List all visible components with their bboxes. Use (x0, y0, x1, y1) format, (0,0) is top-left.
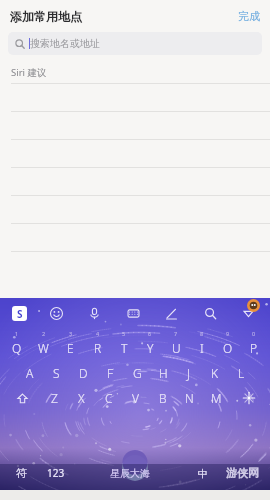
staticText: L (238, 365, 245, 381)
staticText: 3 (69, 330, 73, 337)
staticText: 2 (42, 330, 46, 337)
button[interactable] (0, 167, 270, 195)
staticText: 符 (16, 466, 27, 480)
button[interactable]: G (124, 362, 150, 384)
staticText: Siri 建议 (11, 66, 47, 79)
staticText: Q (12, 340, 22, 356)
button[interactable]: W (30, 337, 57, 359)
staticText: 添加常用地点 (10, 9, 82, 24)
button[interactable]: 符 (4, 461, 38, 485)
button[interactable]: U (163, 337, 189, 359)
staticText: K (211, 365, 219, 381)
button[interactable]: I (189, 337, 215, 359)
staticText: N (185, 390, 194, 406)
button[interactable]: D (70, 362, 97, 384)
staticText: M (211, 390, 222, 406)
button[interactable]: H (150, 362, 176, 384)
button[interactable]: 搜索地名或地址 (8, 32, 262, 55)
button[interactable]: X (68, 387, 95, 409)
staticText: T (121, 340, 128, 356)
staticText: 0 (252, 330, 256, 337)
staticText: R (94, 340, 102, 356)
staticText: 游侠网 (226, 466, 259, 480)
button[interactable]: 星辰大海 (73, 461, 187, 485)
button[interactable]: S (43, 362, 70, 384)
button[interactable]: E (57, 337, 84, 359)
staticText: 中 (198, 467, 208, 480)
staticText: E (67, 340, 74, 356)
button[interactable]: B (149, 387, 176, 409)
button[interactable]: O (215, 337, 241, 359)
staticText: 9 (226, 330, 230, 337)
button[interactable] (0, 139, 270, 167)
staticText: U (172, 340, 181, 356)
button[interactable]: Q (3, 337, 30, 359)
button[interactable]: T (111, 337, 137, 359)
button[interactable]: Backspace (230, 387, 267, 409)
button[interactable]: R (84, 337, 111, 359)
button[interactable]: Keyboard layout (123, 303, 143, 323)
staticText: J (187, 365, 191, 381)
staticText: 搜索地名或地址 (30, 37, 100, 50)
staticText: A (26, 365, 34, 381)
button[interactable]: V (122, 387, 149, 409)
staticText: G (133, 365, 142, 381)
button[interactable]: P (241, 337, 267, 359)
button[interactable]: 中 (187, 461, 219, 485)
button[interactable]: J (176, 362, 202, 384)
staticText: 5 (122, 330, 126, 337)
staticText: W (38, 340, 49, 356)
staticText: Y (147, 340, 154, 356)
staticText: F (107, 365, 114, 381)
button[interactable] (0, 223, 270, 251)
staticText: 4 (96, 330, 100, 337)
staticText: S (53, 365, 60, 381)
button[interactable]: A (16, 362, 43, 384)
button[interactable]: 123 (38, 461, 73, 485)
button[interactable] (0, 251, 270, 279)
button[interactable]: M (203, 387, 230, 409)
button[interactable]: Handwriting (161, 303, 181, 323)
button[interactable]: K (202, 362, 228, 384)
staticText: 6 (148, 330, 152, 337)
staticText: C (105, 390, 113, 406)
staticText: 123 (47, 466, 65, 480)
staticText: S (17, 307, 23, 321)
button[interactable]: Hide keyboard (238, 303, 258, 323)
button[interactable]: Shift (3, 387, 41, 409)
staticText: 星辰大海 (110, 467, 150, 480)
button[interactable]: 完成 (228, 5, 270, 27)
staticText: 完成 (238, 9, 260, 23)
staticText: P (250, 340, 258, 356)
button[interactable]: Enter (219, 461, 266, 485)
staticText: D (79, 365, 88, 381)
button[interactable]: L (228, 362, 254, 384)
button[interactable]: Voice input (84, 303, 104, 323)
button[interactable]: Profile (247, 299, 260, 312)
staticText: O (223, 340, 233, 356)
staticText: Z (51, 390, 58, 406)
staticText: V (132, 390, 139, 406)
button[interactable]: Emoji (46, 303, 66, 323)
staticText: 8 (200, 330, 204, 337)
button[interactable]: F (97, 362, 124, 384)
staticText: B (159, 390, 167, 406)
staticText: 1 (15, 330, 19, 337)
staticText: 7 (174, 330, 178, 337)
button[interactable]: Y (137, 337, 163, 359)
button[interactable]: N (176, 387, 203, 409)
button[interactable] (0, 83, 270, 111)
button[interactable] (0, 111, 270, 139)
button[interactable]: Z (41, 387, 68, 409)
button[interactable]: Search (200, 303, 220, 323)
button[interactable] (0, 195, 270, 223)
button[interactable]: C (95, 387, 122, 409)
staticText: I (200, 340, 204, 356)
staticText: X (78, 390, 85, 406)
staticText: H (159, 365, 168, 381)
button[interactable]: Sogou input (12, 306, 27, 321)
